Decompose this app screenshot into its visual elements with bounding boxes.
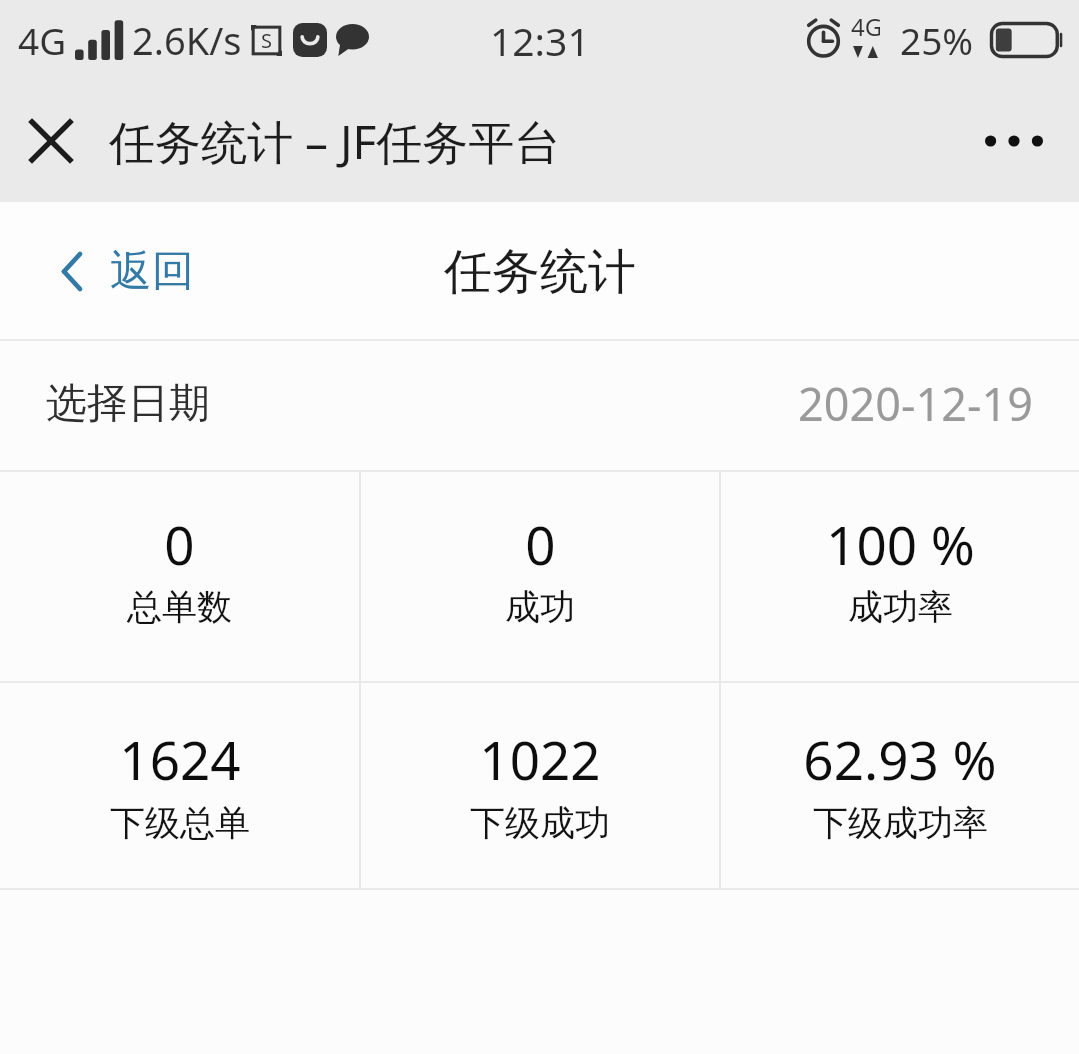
staticText: 下级总单 [110,801,250,845]
staticText: 1624 [119,723,241,795]
staticText: 4G [851,10,880,43]
button[interactable]: 100 % [721,472,1079,681]
staticText: 0 [164,508,195,580]
staticText: 总单数 [127,585,232,629]
staticText: 2020-12-19 [798,373,1033,434]
button[interactable]: More options [985,131,1043,151]
staticText: 2.6K/s [132,14,242,66]
button[interactable]: 1624 [0,683,359,888]
staticText: 成功 [505,585,575,629]
staticText: 下级成功率 [813,801,988,845]
button[interactable]: Close [16,106,86,176]
staticText: 4G [18,15,67,65]
staticText: 返回 [110,245,194,298]
staticText: S [261,27,272,54]
staticText: 任务统计 [444,242,636,302]
staticText: 1022 [479,723,601,795]
staticText: 25% [900,15,974,65]
staticText: 0 [525,508,556,580]
staticText: 62.93 % [803,723,997,795]
button[interactable]: 返回 [62,245,194,298]
button[interactable]: 0 [361,472,719,681]
button[interactable]: 选择日期 [0,341,1079,472]
staticText: 选择日期 [46,378,210,430]
button[interactable]: 1022 [361,683,719,888]
button[interactable]: 62.93 % [721,683,1079,888]
staticText: 12:31 [490,14,590,67]
staticText: 任务统计 – JF任务平台 [109,110,561,173]
staticText: 成功率 [848,585,953,629]
button[interactable]: 0 [0,472,359,681]
staticText: 100 % [826,508,975,580]
staticText: 下级成功 [470,801,610,845]
